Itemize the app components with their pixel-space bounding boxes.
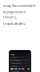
staticText: assignment timers, <box>3 9 26 20</box>
staticText: track drafts. <box>3 21 26 26</box>
staticText: stay focused with <box>3 3 36 8</box>
